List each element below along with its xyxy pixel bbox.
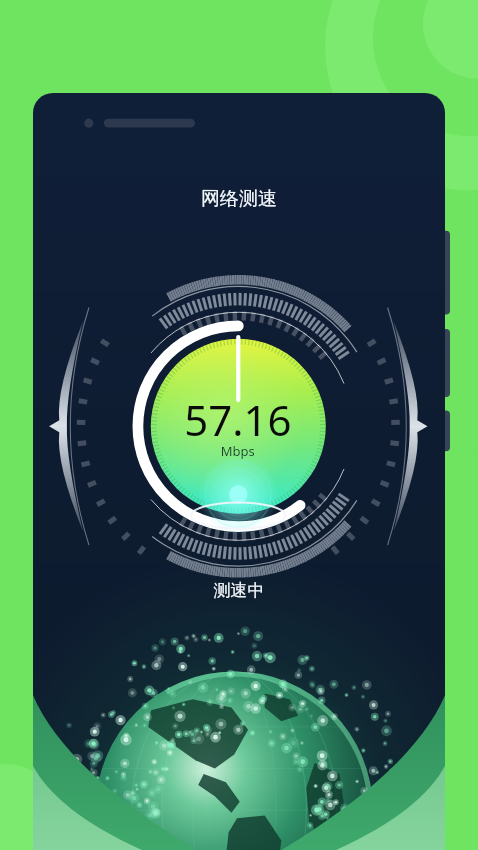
button[interactable]: Start speed test bbox=[124, 310, 354, 540]
